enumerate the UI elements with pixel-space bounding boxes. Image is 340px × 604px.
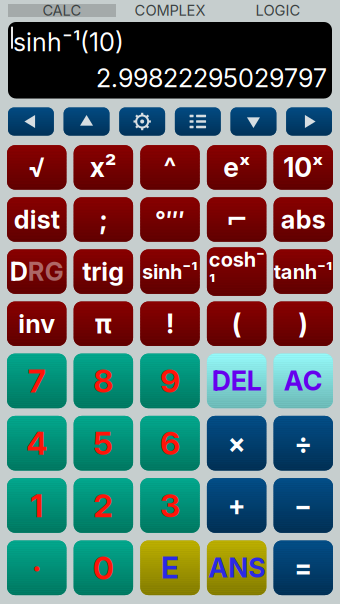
staticText: trig: [82, 256, 124, 287]
staticText: tanh⁻¹: [274, 259, 333, 284]
button[interactable]: LOGIC: [224, 4, 332, 17]
button[interactable]: E: [140, 540, 200, 595]
staticText: 6: [160, 424, 180, 462]
button[interactable]: Move down: [230, 107, 276, 135]
staticText: =: [294, 552, 312, 584]
staticText: 10ˣ: [283, 151, 323, 184]
staticText: COMPLEX: [134, 2, 205, 19]
staticText: √: [28, 151, 46, 184]
staticText: inv: [18, 308, 55, 339]
button[interactable]: Settings: [119, 107, 165, 135]
button[interactable]: 9: [140, 354, 200, 408]
button[interactable]: CALC: [8, 4, 116, 17]
staticText: R: [28, 256, 45, 287]
button[interactable]: −: [274, 478, 333, 533]
button[interactable]: ⌐: [207, 197, 266, 242]
button[interactable]: sinh⁻¹: [140, 249, 200, 294]
staticText: 1: [30, 486, 43, 525]
staticText: 5: [93, 424, 113, 462]
button[interactable]: 1: [7, 478, 66, 533]
button[interactable]: =: [274, 540, 333, 595]
button[interactable]: tanh⁻¹: [274, 249, 333, 294]
button[interactable]: 4: [7, 416, 66, 470]
staticText: ^: [163, 151, 176, 184]
button[interactable]: +: [207, 478, 266, 533]
button[interactable]: ): [274, 301, 333, 346]
staticText: 4: [26, 424, 47, 462]
button[interactable]: !: [140, 301, 200, 346]
staticText: 0: [93, 548, 114, 587]
staticText: π: [95, 308, 112, 340]
staticText: sinh⁻¹: [142, 259, 198, 284]
button[interactable]: √: [7, 145, 66, 190]
staticText: 2: [93, 486, 113, 525]
staticText: CALC: [42, 2, 81, 19]
staticText: !: [166, 308, 174, 340]
staticText: LOGIC: [255, 2, 300, 19]
staticText: 8: [93, 361, 113, 400]
staticText: 3: [160, 486, 180, 525]
staticText: DEL: [212, 365, 262, 397]
staticText: +: [228, 489, 246, 522]
button[interactable]: 3: [140, 478, 200, 533]
staticText: D: [10, 256, 28, 287]
staticText: ·: [32, 548, 41, 587]
button[interactable]: ·: [7, 540, 66, 595]
staticText: sinh⁻¹(10): [13, 27, 124, 57]
button[interactable]: trig: [74, 249, 133, 294]
staticText: ANS: [208, 552, 265, 584]
button[interactable]: 7: [7, 354, 66, 408]
button[interactable]: AC: [274, 354, 333, 408]
staticText: G: [45, 256, 64, 287]
button[interactable]: π: [74, 301, 133, 346]
button[interactable]: Move right: [286, 107, 332, 135]
staticText: 7: [28, 361, 46, 400]
button[interactable]: (: [207, 301, 266, 346]
button[interactable]: 2: [74, 478, 133, 533]
button[interactable]: ;: [74, 197, 133, 242]
staticText: −: [294, 489, 312, 522]
staticText: AC: [284, 365, 323, 397]
staticText: ): [298, 308, 308, 340]
staticText: abs: [281, 204, 326, 235]
button[interactable]: ^: [140, 145, 200, 190]
button[interactable]: x²: [74, 145, 133, 190]
staticText: (: [232, 308, 242, 340]
button[interactable]: 0: [74, 540, 133, 595]
button[interactable]: Move up: [64, 107, 109, 135]
staticText: x²: [90, 151, 117, 184]
button[interactable]: dist: [7, 197, 66, 242]
button[interactable]: ANS: [207, 540, 266, 595]
button[interactable]: ÷: [274, 416, 333, 470]
button[interactable]: DEL: [207, 354, 266, 408]
staticText: eˣ: [223, 151, 250, 184]
staticText: ⌐: [226, 204, 248, 235]
button[interactable]: ×: [207, 416, 266, 470]
button[interactable]: Move left: [8, 107, 54, 135]
staticText: 9: [160, 361, 180, 400]
staticText: E: [161, 550, 179, 586]
button[interactable]: inv: [7, 301, 66, 346]
button[interactable]: 5: [74, 416, 133, 470]
button[interactable]: °′″: [140, 197, 200, 242]
button[interactable]: Menu: [175, 107, 221, 135]
button[interactable]: eˣ: [207, 145, 266, 190]
staticText: dist: [14, 204, 60, 235]
staticText: 2.99822295029797: [96, 63, 327, 93]
button[interactable]: COMPLEX: [116, 4, 224, 17]
staticText: ×: [228, 427, 246, 459]
button[interactable]: D: [7, 249, 66, 294]
staticText: cosh⁻¹: [209, 247, 265, 296]
button[interactable]: cosh⁻¹: [207, 249, 266, 294]
button[interactable]: 10ˣ: [274, 145, 333, 190]
staticText: ;: [99, 203, 107, 236]
staticText: °′″: [155, 205, 185, 234]
button[interactable]: abs: [274, 197, 333, 242]
button[interactable]: 8: [74, 354, 133, 408]
staticText: ÷: [294, 427, 312, 459]
button[interactable]: 6: [140, 416, 200, 470]
